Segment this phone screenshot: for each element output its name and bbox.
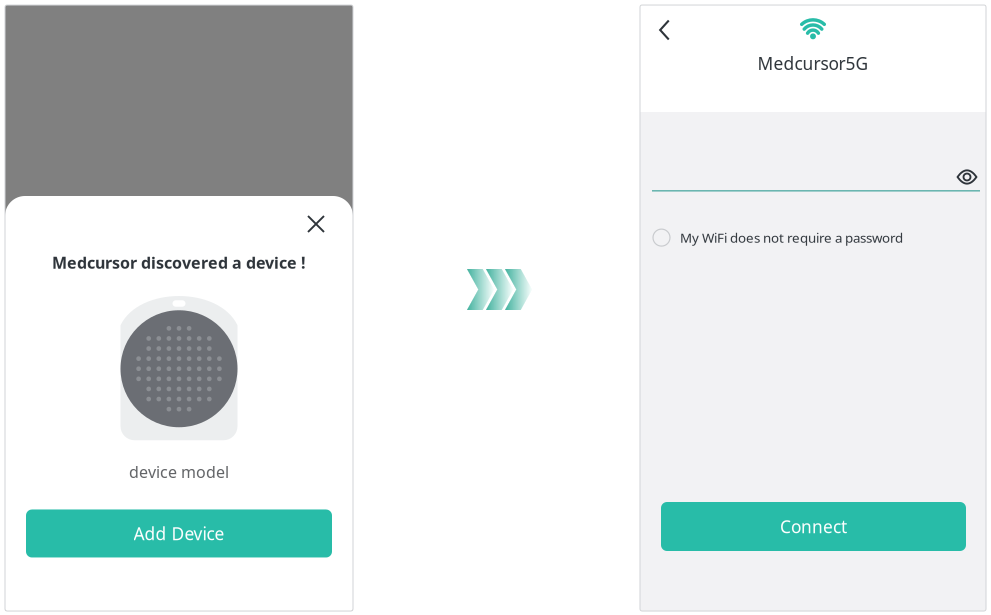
button[interactable]: Add Device xyxy=(26,509,332,557)
staticText: device model xyxy=(129,461,229,482)
staticText: Medcursor5G xyxy=(757,52,868,75)
button[interactable]: Show password xyxy=(954,164,980,190)
button[interactable]: Back xyxy=(645,11,683,49)
staticText: Add Device xyxy=(133,522,224,545)
staticText: Medcursor discovered a device ! xyxy=(52,252,306,273)
staticText: Connect xyxy=(780,515,847,538)
button[interactable]: My WiFi does not require a password xyxy=(640,222,986,254)
button[interactable]: Connect xyxy=(661,502,966,551)
button[interactable]: Close xyxy=(296,206,336,242)
staticText: My WiFi does not require a password xyxy=(680,229,903,246)
